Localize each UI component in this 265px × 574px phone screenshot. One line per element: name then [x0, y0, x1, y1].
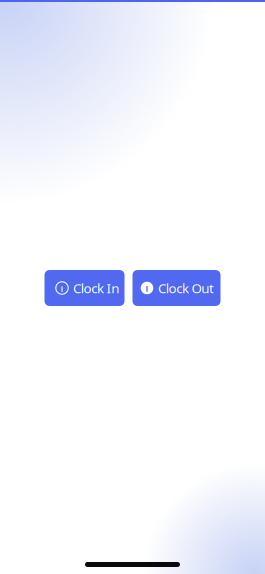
button[interactable]: Clock Out	[132, 270, 220, 306]
staticText: Clock Out	[158, 279, 214, 297]
staticText: Clock In	[73, 279, 119, 297]
button[interactable]: Clock In	[44, 270, 124, 306]
